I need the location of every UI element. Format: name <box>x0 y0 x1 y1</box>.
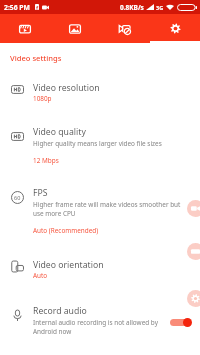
button[interactable]: Record audio switch <box>170 315 192 329</box>
staticText: Internal audio recording is not allowed … <box>33 318 166 336</box>
staticText: 60 <box>14 194 21 201</box>
button[interactable]: Stop recording <box>187 243 200 260</box>
staticText: 12 Mbps <box>33 156 59 165</box>
staticText: 0.8KB/s <box>120 3 144 12</box>
staticText: Auto (Recommended) <box>33 226 99 235</box>
staticText: Record audio <box>33 305 87 317</box>
staticText: Video settings <box>10 53 62 63</box>
button[interactable]: Record audio <box>0 303 200 338</box>
button[interactable]: Screen recorder <box>100 14 150 43</box>
staticText: Video resolution <box>33 82 100 94</box>
staticText: Higher quality means larger video file s… <box>33 139 162 148</box>
staticText: Video quality <box>33 126 86 138</box>
button[interactable]: Record video <box>187 200 200 217</box>
button[interactable]: 60 <box>0 185 200 237</box>
button[interactable]: Video orientation <box>0 257 200 282</box>
button[interactable]: Video resolution <box>0 80 200 105</box>
staticText: 2:56 PM <box>4 3 30 12</box>
button[interactable]: Videos <box>0 14 50 43</box>
staticText: Higher frame rate will make videos smoot… <box>33 200 192 218</box>
button[interactable]: Images <box>50 14 100 43</box>
staticText: Auto <box>33 271 48 280</box>
button[interactable]: Video quality <box>0 124 200 167</box>
staticText: 1080p <box>33 94 52 103</box>
button[interactable]: Settings <box>187 290 200 307</box>
staticText: Video orientation <box>33 259 104 271</box>
button[interactable]: Settings <box>150 14 200 43</box>
staticText: f <box>36 4 39 10</box>
staticText: 21 <box>184 4 190 11</box>
staticText: 3G <box>156 4 164 11</box>
staticText: FPS <box>33 187 48 199</box>
